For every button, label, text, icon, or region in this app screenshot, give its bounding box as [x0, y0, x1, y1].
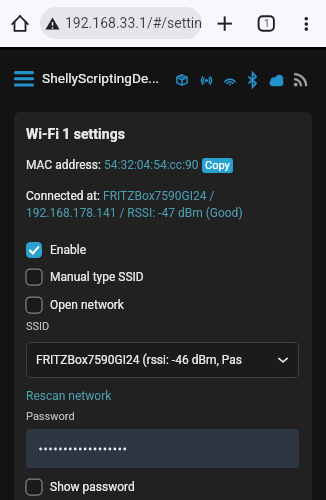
button[interactable]: Show password	[26, 479, 135, 495]
staticText: 54:32:04:54:cc:90	[104, 158, 199, 172]
button[interactable]	[26, 429, 299, 468]
staticText: Enable	[50, 243, 86, 257]
button[interactable]: Enable	[26, 242, 86, 258]
button[interactable]: ShellyScriptingDe...	[42, 70, 160, 86]
button[interactable]: Device	[171, 69, 193, 91]
staticText: FRITZBox7590GI24 /	[103, 189, 215, 203]
button[interactable]: More options	[295, 12, 318, 35]
staticText: 1	[264, 18, 270, 30]
staticText: Password	[26, 410, 75, 423]
button[interactable]: Copy	[202, 158, 233, 173]
button[interactable]: Menu	[15, 71, 33, 87]
staticText: Show password	[50, 480, 135, 494]
button[interactable]: Bluetooth	[242, 69, 264, 91]
staticText: 192.168.33.1/#/setting	[65, 15, 202, 31]
button[interactable]: Signal	[289, 69, 311, 91]
button[interactable]: New tab	[213, 12, 236, 35]
staticText: Manual type SSID	[50, 270, 144, 284]
staticText: Connected at:	[26, 189, 103, 203]
button[interactable]: Broadcast	[195, 69, 217, 91]
button[interactable]: Open network	[26, 297, 124, 313]
button[interactable]: FRITZBox7590GI24 (rssi: -46 dBm, Pas	[26, 342, 299, 378]
button[interactable]: Manual type SSID	[26, 269, 144, 285]
button[interactable]: Tabs	[255, 13, 277, 34]
staticText: Copy	[205, 159, 230, 172]
staticText: Wi-Fi 1 settings	[26, 126, 125, 142]
button[interactable]: Rescan network	[26, 389, 112, 403]
staticText: FRITZBox7590GI24 (rssi: -46 dBm, Pas	[36, 353, 242, 367]
staticText: SSID	[26, 320, 50, 333]
button[interactable]: 192.168.33.1/#/setting	[40, 7, 202, 39]
staticText: 192.168.178.141 / RSSI: -47 dBm (Good)	[26, 206, 243, 220]
button[interactable]: Wi-Fi	[219, 69, 241, 91]
staticText: MAC address:	[26, 158, 104, 172]
button[interactable]: Cloud	[266, 69, 288, 91]
button[interactable]: Home	[8, 12, 32, 36]
staticText: Open network	[50, 298, 124, 312]
